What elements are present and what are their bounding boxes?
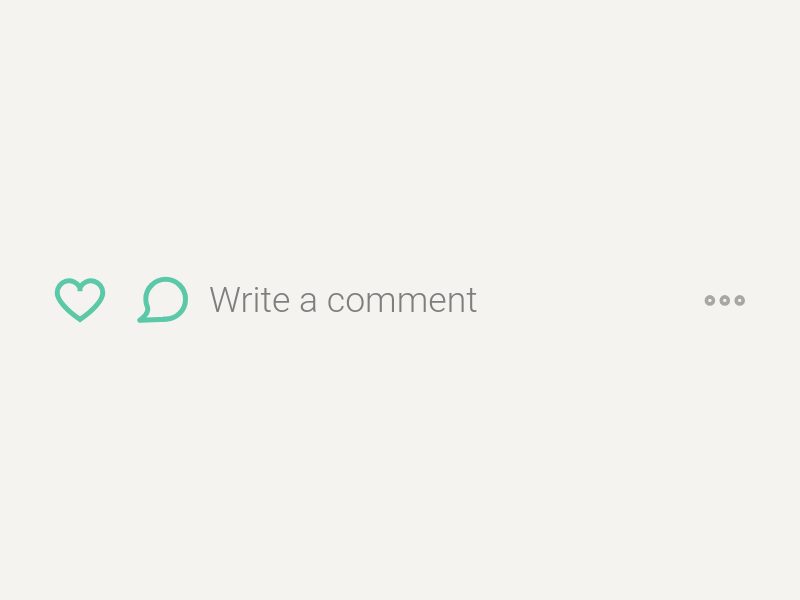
staticText: Write a comment — [209, 279, 478, 321]
button[interactable]: Write a comment — [209, 279, 499, 327]
button[interactable]: Like — [46, 268, 116, 332]
button[interactable]: Comment — [130, 266, 200, 332]
button[interactable]: More options — [694, 280, 756, 320]
